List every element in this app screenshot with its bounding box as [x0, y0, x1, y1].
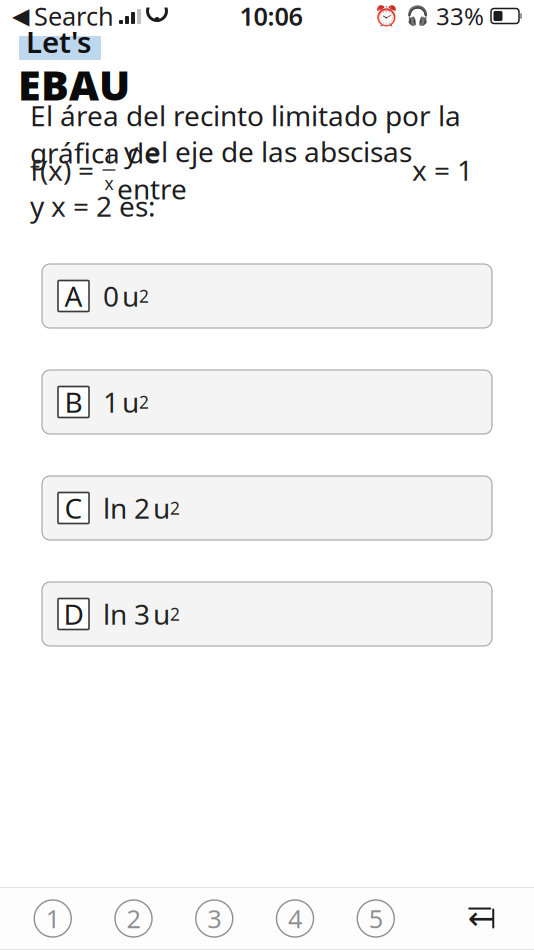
staticText: ◀: [12, 3, 29, 29]
button[interactable]: B: [42, 370, 492, 434]
staticText: 2: [170, 496, 180, 519]
staticText: 1: [46, 902, 60, 935]
staticText: u: [122, 277, 139, 315]
staticText: B: [64, 383, 82, 421]
button[interactable]: Question 5: [348, 890, 404, 946]
staticText: C: [64, 489, 82, 527]
button[interactable]: Question 3: [186, 890, 242, 946]
staticText: 33%: [436, 0, 484, 32]
staticText: 🎧: [406, 5, 429, 27]
staticText: EBAU: [18, 57, 130, 112]
staticText: f(x) =: [30, 151, 101, 189]
staticText: 1: [103, 383, 119, 421]
staticText: Let's: [26, 22, 91, 61]
staticText: es:: [112, 187, 156, 225]
staticText: x = 1: [412, 151, 473, 189]
staticText: ⏰: [374, 5, 399, 27]
staticText: 5: [369, 902, 383, 935]
staticText: A: [64, 277, 82, 315]
button[interactable]: D: [42, 582, 492, 646]
button[interactable]: A: [42, 264, 492, 328]
button[interactable]: Question 4: [267, 890, 323, 946]
staticText: 0: [103, 277, 119, 315]
button[interactable]: Question 1: [25, 890, 81, 946]
button[interactable]: C: [42, 476, 492, 540]
staticText: 3: [207, 902, 221, 935]
button[interactable]: Question 2: [105, 890, 161, 946]
staticText: u: [153, 489, 170, 527]
staticText: 2: [139, 284, 149, 307]
staticText: u: [153, 595, 170, 633]
staticText: ln 3: [103, 595, 150, 633]
staticText: D: [63, 595, 83, 633]
staticText: 2: [170, 602, 180, 625]
staticText: 2: [126, 902, 140, 935]
staticText: 10:06: [239, 0, 302, 33]
staticText: 4: [288, 902, 302, 935]
staticText: y el eje de las abscisas entre: [117, 133, 412, 207]
staticText: x = 2: [51, 187, 112, 225]
staticText: Search: [34, 0, 114, 33]
staticText: y: [30, 187, 51, 225]
staticText: El área del recinto limitado por la gráf…: [30, 97, 461, 171]
staticText: u: [122, 383, 139, 421]
staticText: 1: [104, 145, 114, 168]
staticText: ←: [468, 900, 495, 937]
staticText: 2: [139, 390, 149, 413]
staticText: ln 2: [103, 489, 150, 527]
button[interactable]: Back: [453, 890, 509, 946]
staticText: x: [104, 172, 113, 195]
